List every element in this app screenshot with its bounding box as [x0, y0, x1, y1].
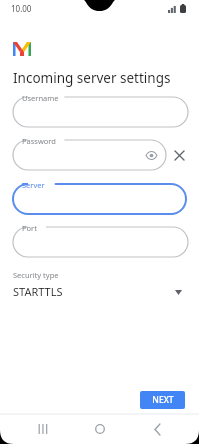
button[interactable]: Clear: [171, 147, 187, 163]
staticText: STARTTLS: [13, 284, 63, 299]
button[interactable]: Recents: [27, 414, 57, 444]
staticText: 10.00: [11, 3, 32, 14]
button[interactable]: Server: [13, 184, 186, 214]
staticText: NEXT: [152, 394, 174, 406]
button[interactable]: Port: [13, 227, 188, 257]
button[interactable]: Show password: [144, 148, 158, 162]
staticText: Username: [22, 93, 59, 103]
button[interactable]: Security type: [0, 268, 199, 308]
button[interactable]: Username: [13, 97, 188, 127]
button[interactable]: Back: [142, 414, 172, 444]
staticText: Port: [22, 223, 37, 233]
button[interactable]: Home: [85, 414, 115, 444]
staticText: Server: [22, 180, 45, 190]
button[interactable]: NEXT: [140, 391, 185, 409]
staticText: Incoming server settings: [13, 69, 171, 87]
button[interactable]: Password: [13, 140, 166, 170]
staticText: Security type: [13, 270, 59, 280]
staticText: Password: [22, 136, 56, 146]
